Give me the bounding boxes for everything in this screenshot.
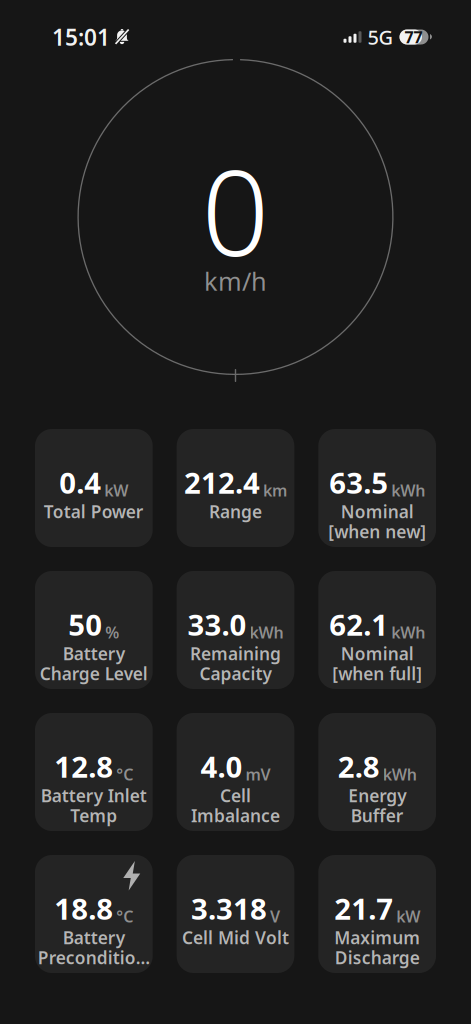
button[interactable]: 33.0 (177, 571, 294, 689)
staticText: km (263, 480, 287, 501)
staticText: Battery Inlet (41, 784, 147, 807)
button[interactable]: 4.0 (177, 713, 294, 831)
staticText: Remaining (190, 642, 281, 665)
staticText: 50 (68, 605, 102, 644)
staticText: Preconditio… (38, 946, 150, 969)
staticText: kW (104, 480, 128, 501)
staticText: Battery (63, 926, 125, 949)
staticText: Capacity (199, 662, 271, 685)
staticText: 5G (367, 24, 393, 50)
staticText: Imbalance (191, 804, 280, 827)
staticText: °C (116, 906, 133, 927)
staticText: °C (116, 764, 133, 785)
button[interactable]: 3.318 (177, 855, 294, 973)
button[interactable]: 2.8 (318, 713, 436, 831)
staticText: Discharge (335, 946, 420, 969)
button[interactable]: 212.4 (177, 429, 294, 547)
staticText: kW (396, 906, 420, 927)
staticText: Temp (70, 804, 117, 827)
staticText: Buffer (351, 804, 404, 827)
button[interactable]: 0.4 (35, 429, 153, 547)
staticText: Maximum (334, 926, 420, 949)
staticText: 63.5 (329, 463, 388, 502)
button[interactable]: 63.5 (318, 429, 436, 547)
staticText: 77 (404, 26, 422, 48)
staticText: kWh (249, 622, 283, 643)
staticText: mV (245, 764, 270, 785)
staticText: 0 (201, 131, 269, 289)
staticText: V (270, 906, 280, 927)
staticText: 12.8 (54, 747, 113, 786)
staticText: 212.4 (184, 463, 260, 502)
staticText: Nominal (341, 500, 414, 523)
staticText: 2.8 (338, 747, 380, 786)
staticText: 18.8 (54, 889, 113, 928)
button[interactable]: 50 (35, 571, 153, 689)
staticText: Charge Level (40, 662, 148, 685)
staticText: 21.7 (334, 889, 393, 928)
staticText: [when new] (328, 520, 426, 543)
button[interactable]: 12.8 (35, 713, 153, 831)
staticText: % (105, 622, 119, 643)
staticText: 3.318 (191, 889, 267, 928)
staticText: 33.0 (187, 605, 246, 644)
staticText: kWh (383, 764, 417, 785)
staticText: Energy (348, 784, 406, 807)
staticText: Nominal (341, 642, 414, 665)
staticText: 15:01 (52, 22, 110, 52)
button[interactable]: 62.1 (318, 571, 436, 689)
staticText: kWh (391, 480, 425, 501)
staticText: km/h (204, 264, 267, 298)
staticText: kWh (391, 622, 425, 643)
staticText: Range (209, 500, 262, 523)
button[interactable]: 18.8 (35, 855, 153, 973)
staticText: 62.1 (329, 605, 388, 644)
staticText: 4.0 (200, 747, 242, 786)
staticText: Cell Mid Volt (182, 926, 289, 949)
staticText: Cell (220, 784, 251, 807)
staticText: [when full] (332, 662, 422, 685)
staticText: Battery (63, 642, 125, 665)
button[interactable]: 21.7 (318, 855, 436, 973)
staticText: Total Power (44, 500, 144, 523)
staticText: 0.4 (59, 463, 101, 502)
